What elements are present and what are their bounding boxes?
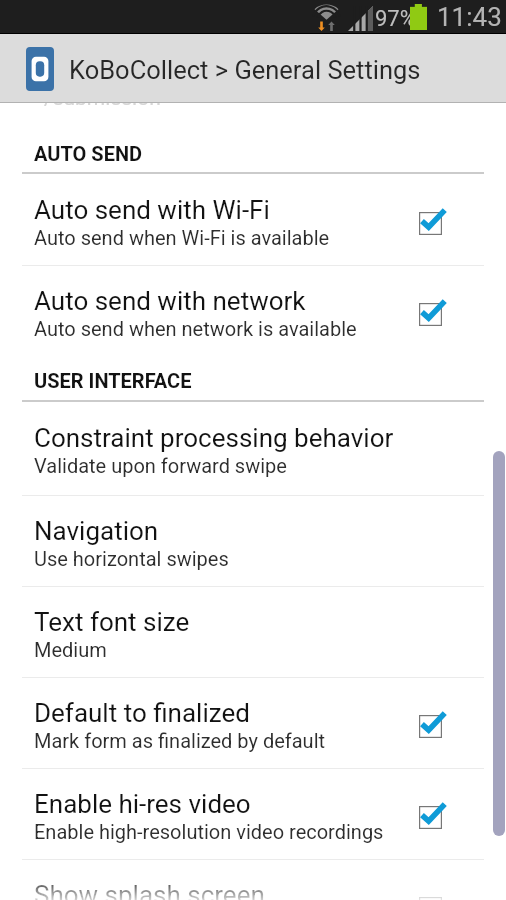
button[interactable]: Text font size bbox=[0, 587, 506, 677]
staticText: /submission bbox=[44, 86, 161, 111]
button[interactable]: Unchecked toggle bbox=[411, 884, 457, 900]
staticText: Auto send when Wi-Fi is available bbox=[34, 226, 330, 249]
button[interactable]: Checked toggle bbox=[411, 199, 457, 245]
staticText: Mark form as finalized by default bbox=[34, 729, 326, 752]
staticText: 11:43 bbox=[437, 2, 502, 32]
staticText: Constraint processing behavior bbox=[34, 423, 394, 453]
staticText: USER INTERFACE bbox=[34, 369, 192, 392]
staticText: AUTO SEND bbox=[34, 142, 143, 165]
staticText: Use horizontal swipes bbox=[34, 547, 229, 570]
staticText: Text font size bbox=[34, 607, 190, 637]
staticText: KoBoCollect > General Settings bbox=[69, 55, 421, 85]
staticText: Medium bbox=[34, 638, 107, 661]
staticText: Enable high-resolution video recordings bbox=[34, 820, 384, 843]
button[interactable]: Auto send with network bbox=[0, 266, 506, 358]
button[interactable]: Show splash screen bbox=[0, 860, 506, 900]
button[interactable]: Navigation bbox=[0, 496, 506, 586]
staticText: Auto send with Wi-Fi bbox=[34, 195, 270, 225]
other: App icon bbox=[26, 47, 54, 91]
button[interactable]: Checked toggle bbox=[411, 702, 457, 748]
staticText: Auto send with network bbox=[34, 286, 306, 316]
button[interactable]: Default to finalized bbox=[0, 678, 506, 768]
staticText: Default to finalized bbox=[34, 698, 250, 728]
staticText: Validate upon forward swipe bbox=[34, 454, 287, 477]
button[interactable]: Auto send with Wi-Fi bbox=[0, 174, 506, 265]
staticText: Enable hi-res video bbox=[34, 789, 251, 819]
button[interactable]: Enable hi-res video bbox=[0, 769, 506, 859]
button[interactable]: Constraint processing behavior bbox=[0, 402, 506, 495]
staticText: Auto send when network is available bbox=[34, 317, 357, 340]
staticText: Navigation bbox=[34, 516, 159, 546]
button[interactable]: Checked toggle bbox=[411, 793, 457, 839]
staticText: 97% bbox=[375, 6, 416, 32]
staticText: Show splash screen bbox=[34, 880, 265, 900]
button[interactable]: Checked toggle bbox=[411, 290, 457, 336]
